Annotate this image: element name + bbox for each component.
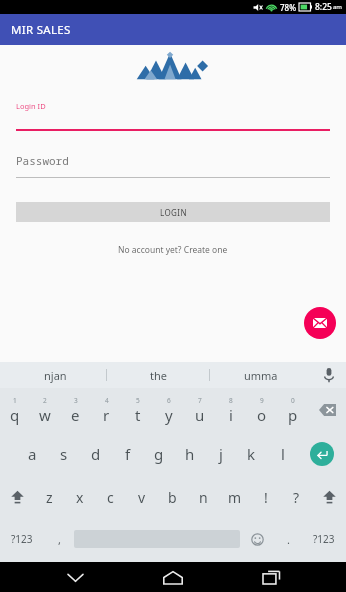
staticText: ?123 xyxy=(313,532,335,546)
staticText: 78% xyxy=(280,2,296,13)
button[interactable]: 6 xyxy=(153,388,184,432)
staticText: 9 xyxy=(260,396,264,405)
button[interactable]: 2 xyxy=(30,388,60,432)
button[interactable]: 3 xyxy=(60,388,91,432)
button[interactable]: h xyxy=(174,432,205,476)
button[interactable]: Contact us xyxy=(304,307,336,339)
staticText: j xyxy=(219,444,223,464)
staticText: the xyxy=(150,368,167,383)
button[interactable]: n xyxy=(188,476,219,518)
button[interactable]: 9 xyxy=(246,388,277,432)
staticText: 8:25 xyxy=(315,1,332,13)
staticText: 3 xyxy=(74,396,78,405)
staticText: 5 xyxy=(136,396,140,405)
staticText: ?123 xyxy=(11,532,33,546)
staticText: l xyxy=(281,444,285,464)
staticText: n xyxy=(199,488,208,507)
staticText: Password xyxy=(16,153,69,168)
button[interactable]: 1 xyxy=(0,388,30,432)
button[interactable]: Password xyxy=(16,153,330,178)
button[interactable]: umma xyxy=(210,362,312,388)
staticText: t xyxy=(135,405,141,425)
staticText: p xyxy=(288,405,298,425)
button[interactable]: No account yet? Create one xyxy=(114,240,232,260)
staticText: b xyxy=(168,488,177,507)
button[interactable]: ?123 xyxy=(302,518,346,560)
button[interactable]: Hide keyboard xyxy=(52,562,98,592)
staticText: v xyxy=(138,488,146,507)
staticText: 2 xyxy=(43,396,47,405)
button[interactable]: , xyxy=(44,518,74,560)
button[interactable]: a xyxy=(16,432,48,476)
button[interactable]: Shift xyxy=(312,476,346,518)
staticText: g xyxy=(154,444,164,464)
staticText: 4 xyxy=(105,396,109,405)
button[interactable]: ?123 xyxy=(0,518,44,560)
button[interactable]: Backspace xyxy=(308,388,346,432)
staticText: 1 xyxy=(13,396,17,405)
staticText: k xyxy=(247,444,256,464)
button[interactable]: Login ID xyxy=(16,101,330,131)
staticText: o xyxy=(257,405,267,425)
button[interactable]: the xyxy=(107,362,209,388)
staticText: , xyxy=(58,532,61,547)
staticText: 6 xyxy=(167,396,171,405)
button[interactable]: Voice input xyxy=(312,362,346,388)
button[interactable]: ? xyxy=(281,476,312,518)
button[interactable]: x xyxy=(64,476,95,518)
button[interactable]: g xyxy=(143,432,174,476)
staticText: i xyxy=(229,405,233,425)
staticText: u xyxy=(195,405,205,425)
staticText: 8 xyxy=(229,396,233,405)
staticText: f xyxy=(125,444,131,464)
staticText: x xyxy=(76,488,84,507)
button[interactable]: 7 xyxy=(184,388,215,432)
button[interactable]: ! xyxy=(250,476,281,518)
staticText: m xyxy=(228,488,242,507)
button[interactable]: m xyxy=(219,476,250,518)
staticText: h xyxy=(185,444,195,464)
button[interactable]: s xyxy=(48,432,80,476)
staticText: umma xyxy=(244,368,278,383)
button[interactable]: Enter xyxy=(298,432,346,476)
button[interactable]: Shift xyxy=(0,476,34,518)
button[interactable]: c xyxy=(95,476,126,518)
staticText: d xyxy=(91,444,101,464)
staticText: njan xyxy=(44,368,67,383)
staticText: w xyxy=(39,405,51,425)
button[interactable]: v xyxy=(126,476,157,518)
button[interactable]: 0 xyxy=(277,388,308,432)
button[interactable]: njan xyxy=(4,362,106,388)
button[interactable]: k xyxy=(236,432,267,476)
button[interactable]: Home xyxy=(150,562,196,592)
button[interactable]: 4 xyxy=(91,388,122,432)
button[interactable]: Recent apps xyxy=(248,562,294,592)
button[interactable]: LOGIN xyxy=(16,202,330,222)
staticText: ! xyxy=(264,488,268,507)
button[interactable]: 8 xyxy=(215,388,246,432)
staticText: e xyxy=(71,405,80,425)
button[interactable]: b xyxy=(157,476,188,518)
button[interactable]: . xyxy=(274,518,302,560)
staticText: 7 xyxy=(198,396,202,405)
button[interactable]: 5 xyxy=(122,388,153,432)
button[interactable]: Emoji xyxy=(240,518,274,560)
staticText: MIR SALES xyxy=(11,22,71,38)
staticText: c xyxy=(107,488,114,507)
button[interactable]: l xyxy=(267,432,298,476)
staticText: q xyxy=(10,405,20,425)
staticText: 0 xyxy=(291,396,295,405)
button[interactable]: j xyxy=(205,432,236,476)
staticText: r xyxy=(103,405,110,425)
button[interactable]: f xyxy=(112,432,143,476)
staticText: No account yet? Create one xyxy=(118,244,228,256)
staticText: s xyxy=(60,444,68,464)
button[interactable]: z xyxy=(34,476,64,518)
staticText: y xyxy=(165,405,173,425)
button[interactable]: d xyxy=(80,432,112,476)
staticText: ? xyxy=(293,488,300,507)
staticText: . xyxy=(287,532,290,547)
staticText: LOGIN xyxy=(160,207,187,218)
staticText: am xyxy=(333,3,342,11)
